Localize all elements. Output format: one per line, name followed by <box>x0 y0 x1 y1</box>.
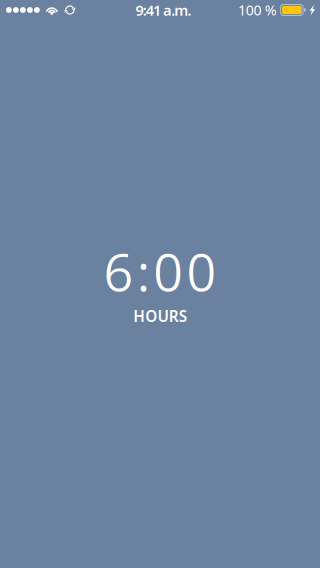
staticText: S <box>179 306 187 326</box>
staticText: 9:41 a.m. <box>136 0 191 20</box>
staticText: 6 <box>103 236 133 306</box>
button[interactable]: 6 <box>0 248 320 323</box>
staticText: 0 <box>153 236 183 306</box>
staticText: H <box>133 306 145 326</box>
staticText: 100 % <box>238 0 277 20</box>
staticText: : <box>137 236 150 306</box>
staticText: O <box>145 306 157 326</box>
staticText: R <box>169 306 179 326</box>
staticText: U <box>157 306 168 326</box>
staticText: 0 <box>187 236 217 306</box>
